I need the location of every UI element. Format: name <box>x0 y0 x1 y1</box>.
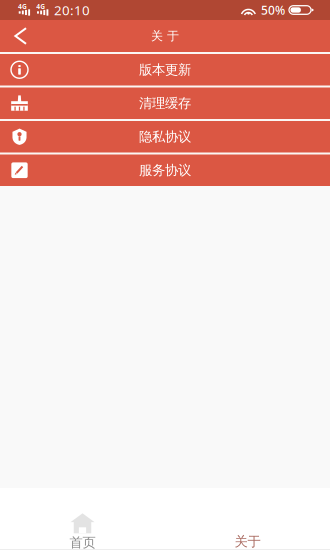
button[interactable]: 服务协议 <box>0 154 330 186</box>
staticText: 服务协议 <box>139 162 191 178</box>
staticText: 隐私协议 <box>139 129 191 145</box>
button[interactable]: 首页 <box>0 488 165 549</box>
staticText: 4G <box>18 2 27 11</box>
button[interactable]: Back <box>0 20 46 52</box>
button[interactable]: 隐私协议 <box>0 121 330 152</box>
staticText: 版本更新 <box>139 62 191 78</box>
staticText: 首页 <box>69 534 95 550</box>
button[interactable]: 关于 <box>165 488 330 549</box>
button[interactable]: 版本更新 <box>0 54 330 85</box>
staticText: 关于 <box>234 533 260 550</box>
staticText: 关 于 <box>151 29 179 43</box>
button[interactable]: 清理缓存 <box>0 87 330 119</box>
staticText: 清理缓存 <box>139 95 191 111</box>
staticText: 4G <box>36 2 45 11</box>
staticText: 50% <box>261 2 285 18</box>
staticText: 20:10 <box>54 1 90 19</box>
